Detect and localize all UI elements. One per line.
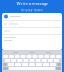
staticText: to your team bbox=[21, 7, 43, 12]
staticText: Write a message bbox=[16, 1, 47, 6]
